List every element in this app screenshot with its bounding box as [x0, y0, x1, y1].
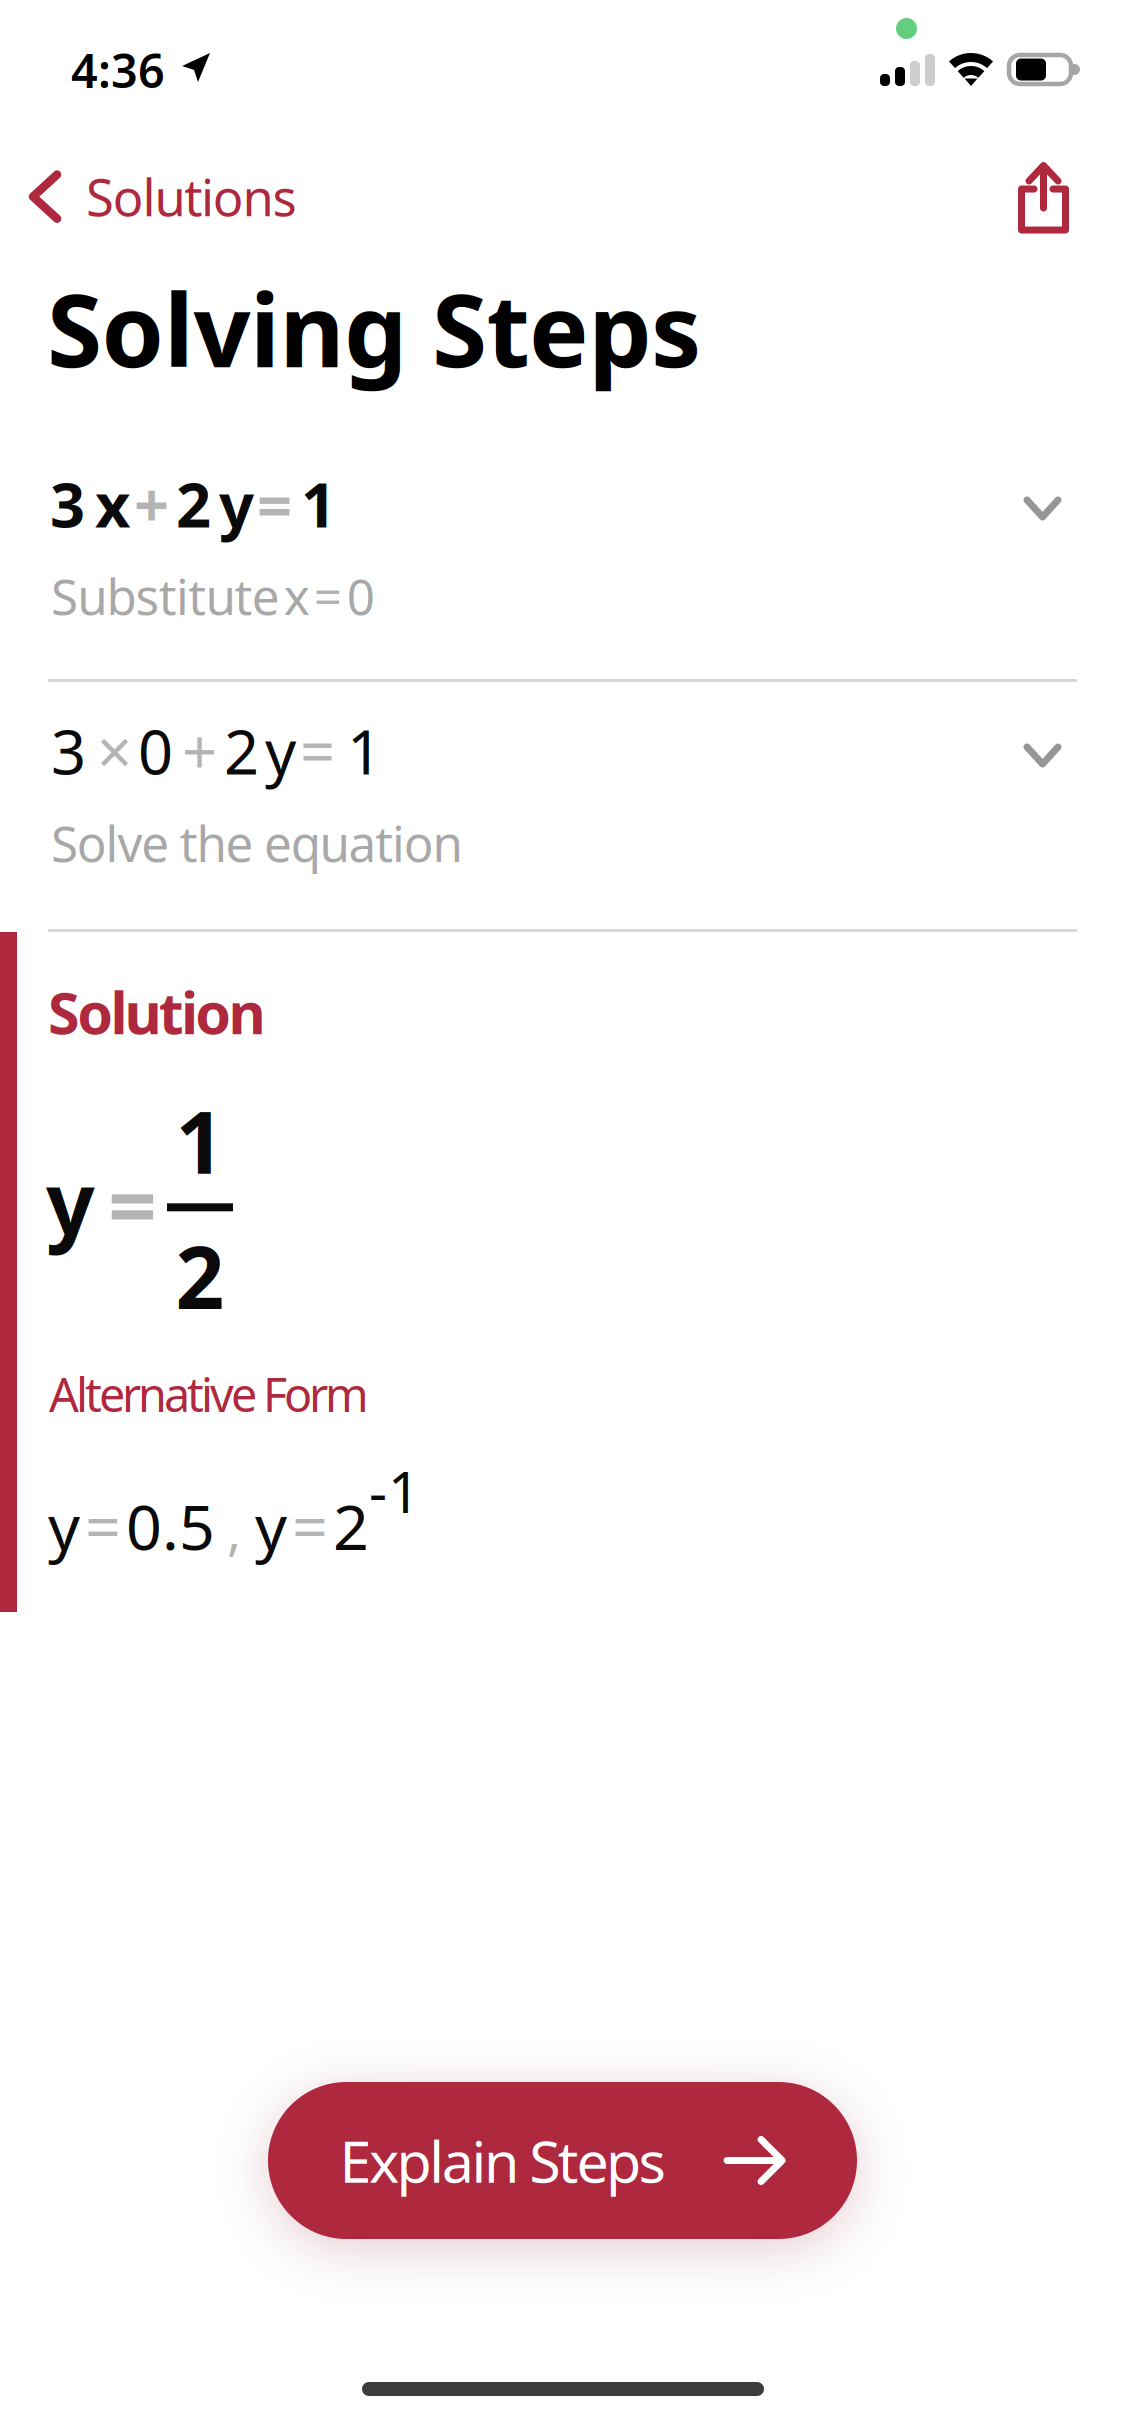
staticText: 2 [333, 1484, 369, 1567]
staticText: x [95, 463, 130, 544]
button[interactable]: Share [994, 139, 1093, 256]
staticText: 0 [138, 710, 173, 791]
button[interactable]: Solutions [6, 145, 314, 248]
button[interactable]: Explain Steps [268, 2082, 857, 2239]
staticText: Solve the equation [51, 810, 463, 875]
staticText: 2 [176, 463, 211, 544]
staticText: + [134, 463, 169, 544]
staticText: = [108, 1148, 157, 1261]
staticText: Explain Steps [339, 2122, 666, 2198]
staticText: = [314, 563, 342, 628]
staticText: = [292, 1484, 328, 1567]
staticText: Solving Steps [47, 262, 701, 395]
staticText: 1 [388, 1454, 420, 1528]
staticText: Solutions [86, 163, 296, 230]
staticText: 3 [50, 463, 85, 544]
staticText: 1 [175, 1084, 224, 1197]
staticText: x [284, 563, 310, 628]
button[interactable]: 3 [0, 463, 1125, 679]
staticText: 1 [347, 710, 382, 791]
staticText: = [300, 710, 335, 791]
staticText: 2 [224, 710, 259, 791]
staticText: 4:36 [71, 39, 165, 101]
staticText: y [46, 1145, 95, 1258]
staticText: Alternative Form [49, 1363, 369, 1425]
staticText: Solution [48, 974, 265, 1050]
staticText: 2 [175, 1219, 224, 1333]
staticText: y [255, 1484, 287, 1567]
staticText: × [97, 710, 132, 791]
staticText: y [48, 1484, 80, 1567]
staticText: + [182, 710, 217, 791]
staticText: , [227, 1494, 241, 1565]
staticText: = [85, 1484, 121, 1567]
staticText: 0 [347, 563, 375, 628]
staticText: 0.5 [126, 1484, 215, 1567]
staticText: 1 [301, 463, 336, 544]
staticText: 3 [51, 710, 86, 791]
staticText: y [265, 710, 296, 791]
staticText: y [219, 463, 254, 544]
button[interactable]: 3 [0, 710, 1125, 915]
staticText: - [369, 1454, 387, 1528]
staticText: Substitute [51, 563, 280, 628]
staticText: = [257, 463, 292, 544]
